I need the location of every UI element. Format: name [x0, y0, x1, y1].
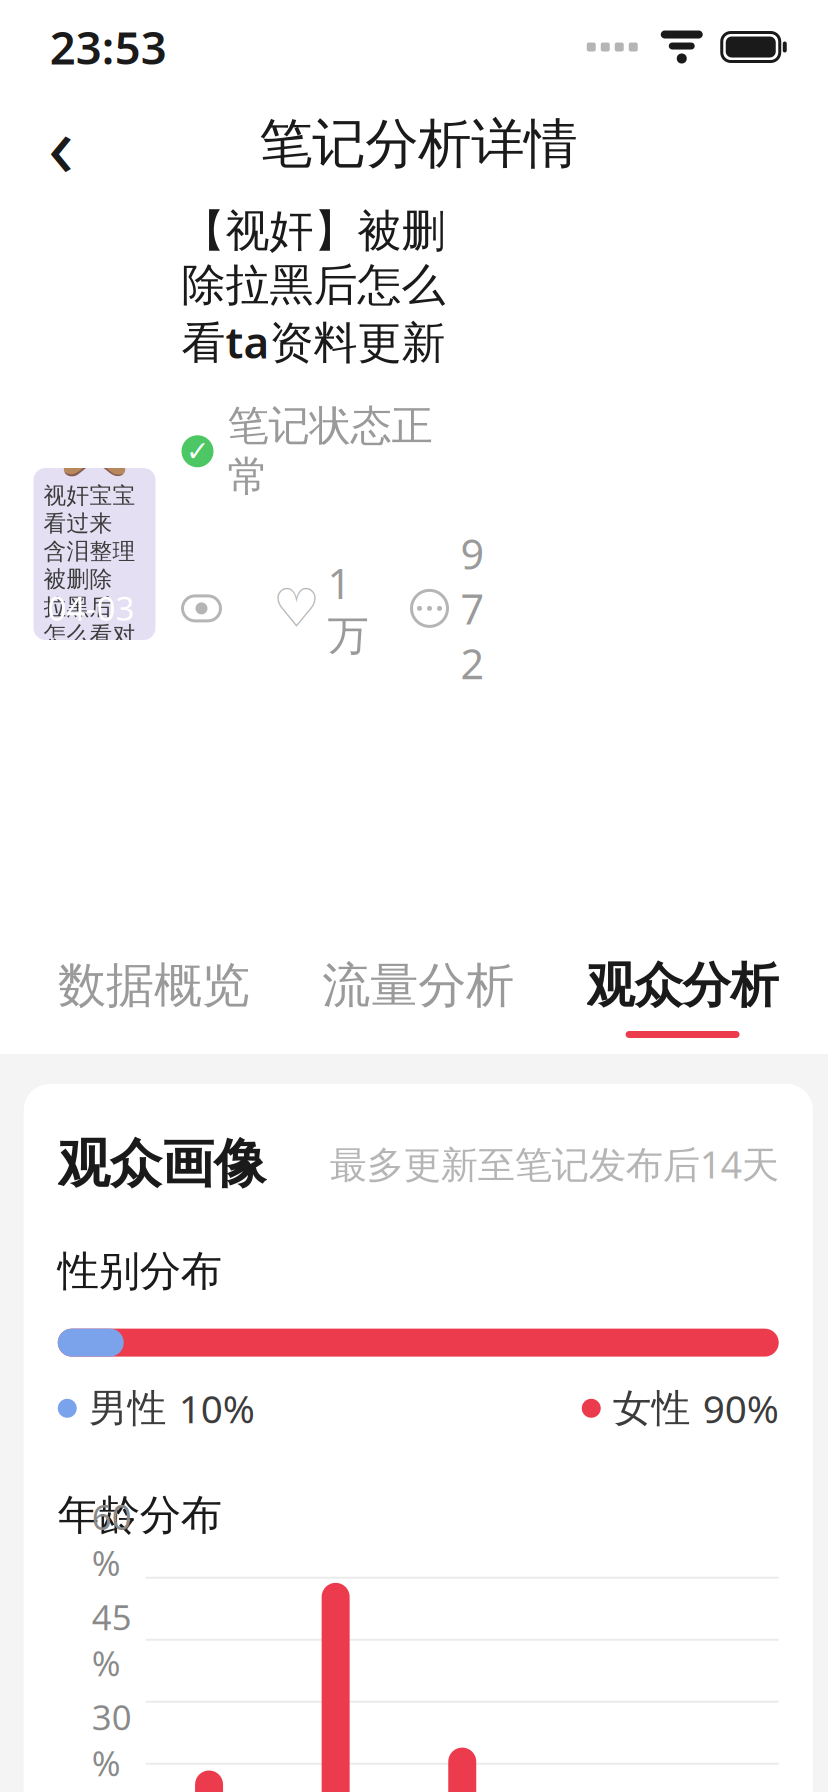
staticText: ♡: [272, 578, 320, 639]
staticText: 男性: [89, 1384, 167, 1432]
staticText: 30%: [92, 1694, 132, 1786]
staticText: 972: [460, 526, 484, 691]
staticText: ✓: [186, 435, 209, 467]
button[interactable]: 观众分析: [550, 932, 815, 1054]
staticText: 1万: [327, 556, 368, 661]
button[interactable]: 返回: [22, 105, 100, 183]
staticText: 🙊: [53, 406, 136, 482]
staticText: 含泪整理被删除: [43, 537, 135, 593]
staticText: 观众画像: [58, 1132, 266, 1196]
staticText: 流量分析: [322, 956, 514, 1015]
staticText: 45%: [92, 1594, 132, 1686]
button[interactable]: 数据概览: [22, 932, 286, 1054]
staticText: 年龄分布: [58, 1490, 222, 1541]
staticText: 视奸宝宝看过来: [43, 482, 135, 537]
staticText: 笔记分析详情: [259, 111, 577, 177]
staticText: 【视奸】被删除拉黑后怎么看ta资料更新: [181, 204, 445, 370]
staticText: 性别分布: [58, 1246, 222, 1297]
staticText: 怎么看对方资料: [43, 621, 135, 677]
staticText: 数据概览: [58, 956, 250, 1015]
staticText: ‹: [48, 87, 74, 201]
staticText: 60%: [92, 1494, 132, 1586]
staticText: 女性: [613, 1384, 691, 1432]
staticText: 观众分析: [587, 956, 779, 1015]
staticText: 23:53: [50, 17, 167, 77]
staticText: 10%: [179, 1383, 255, 1434]
button[interactable]: 流量分析: [286, 932, 550, 1054]
staticText: 90%: [703, 1383, 779, 1434]
staticText: 04-03: [47, 586, 134, 630]
staticText: 最多更新至笔记发布后14天: [330, 1139, 779, 1189]
staticText: 拉黑后: [43, 593, 112, 621]
staticText: 笔记状态正常: [227, 400, 432, 502]
